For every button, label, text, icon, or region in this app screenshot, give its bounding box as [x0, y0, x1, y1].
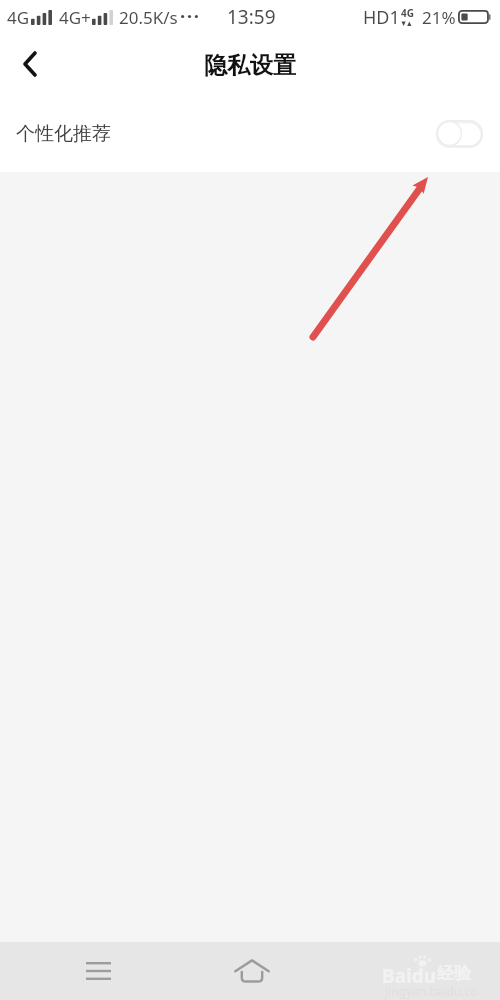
button[interactable]: Recent apps — [66, 942, 130, 1000]
staticText: 20.5K/s — [119, 6, 178, 29]
staticText: 个性化推荐 — [16, 122, 111, 146]
button[interactable]: Personalized recommendation toggle — [436, 120, 483, 147]
staticText: 4G — [7, 6, 30, 29]
staticText: Baidu — [382, 963, 437, 989]
staticText: 4G+ — [59, 6, 91, 29]
staticText: 经验 — [437, 963, 471, 984]
staticText: 4G — [401, 6, 414, 20]
staticText: 13:59 — [227, 4, 276, 30]
button[interactable]: Home — [220, 942, 284, 1000]
staticText: HD1 — [363, 5, 400, 30]
button[interactable]: 个性化推荐 — [0, 98, 500, 172]
button[interactable]: Back — [1, 35, 59, 93]
staticText: 隐私设置 — [204, 51, 296, 80]
staticText: 21% — [422, 6, 456, 29]
